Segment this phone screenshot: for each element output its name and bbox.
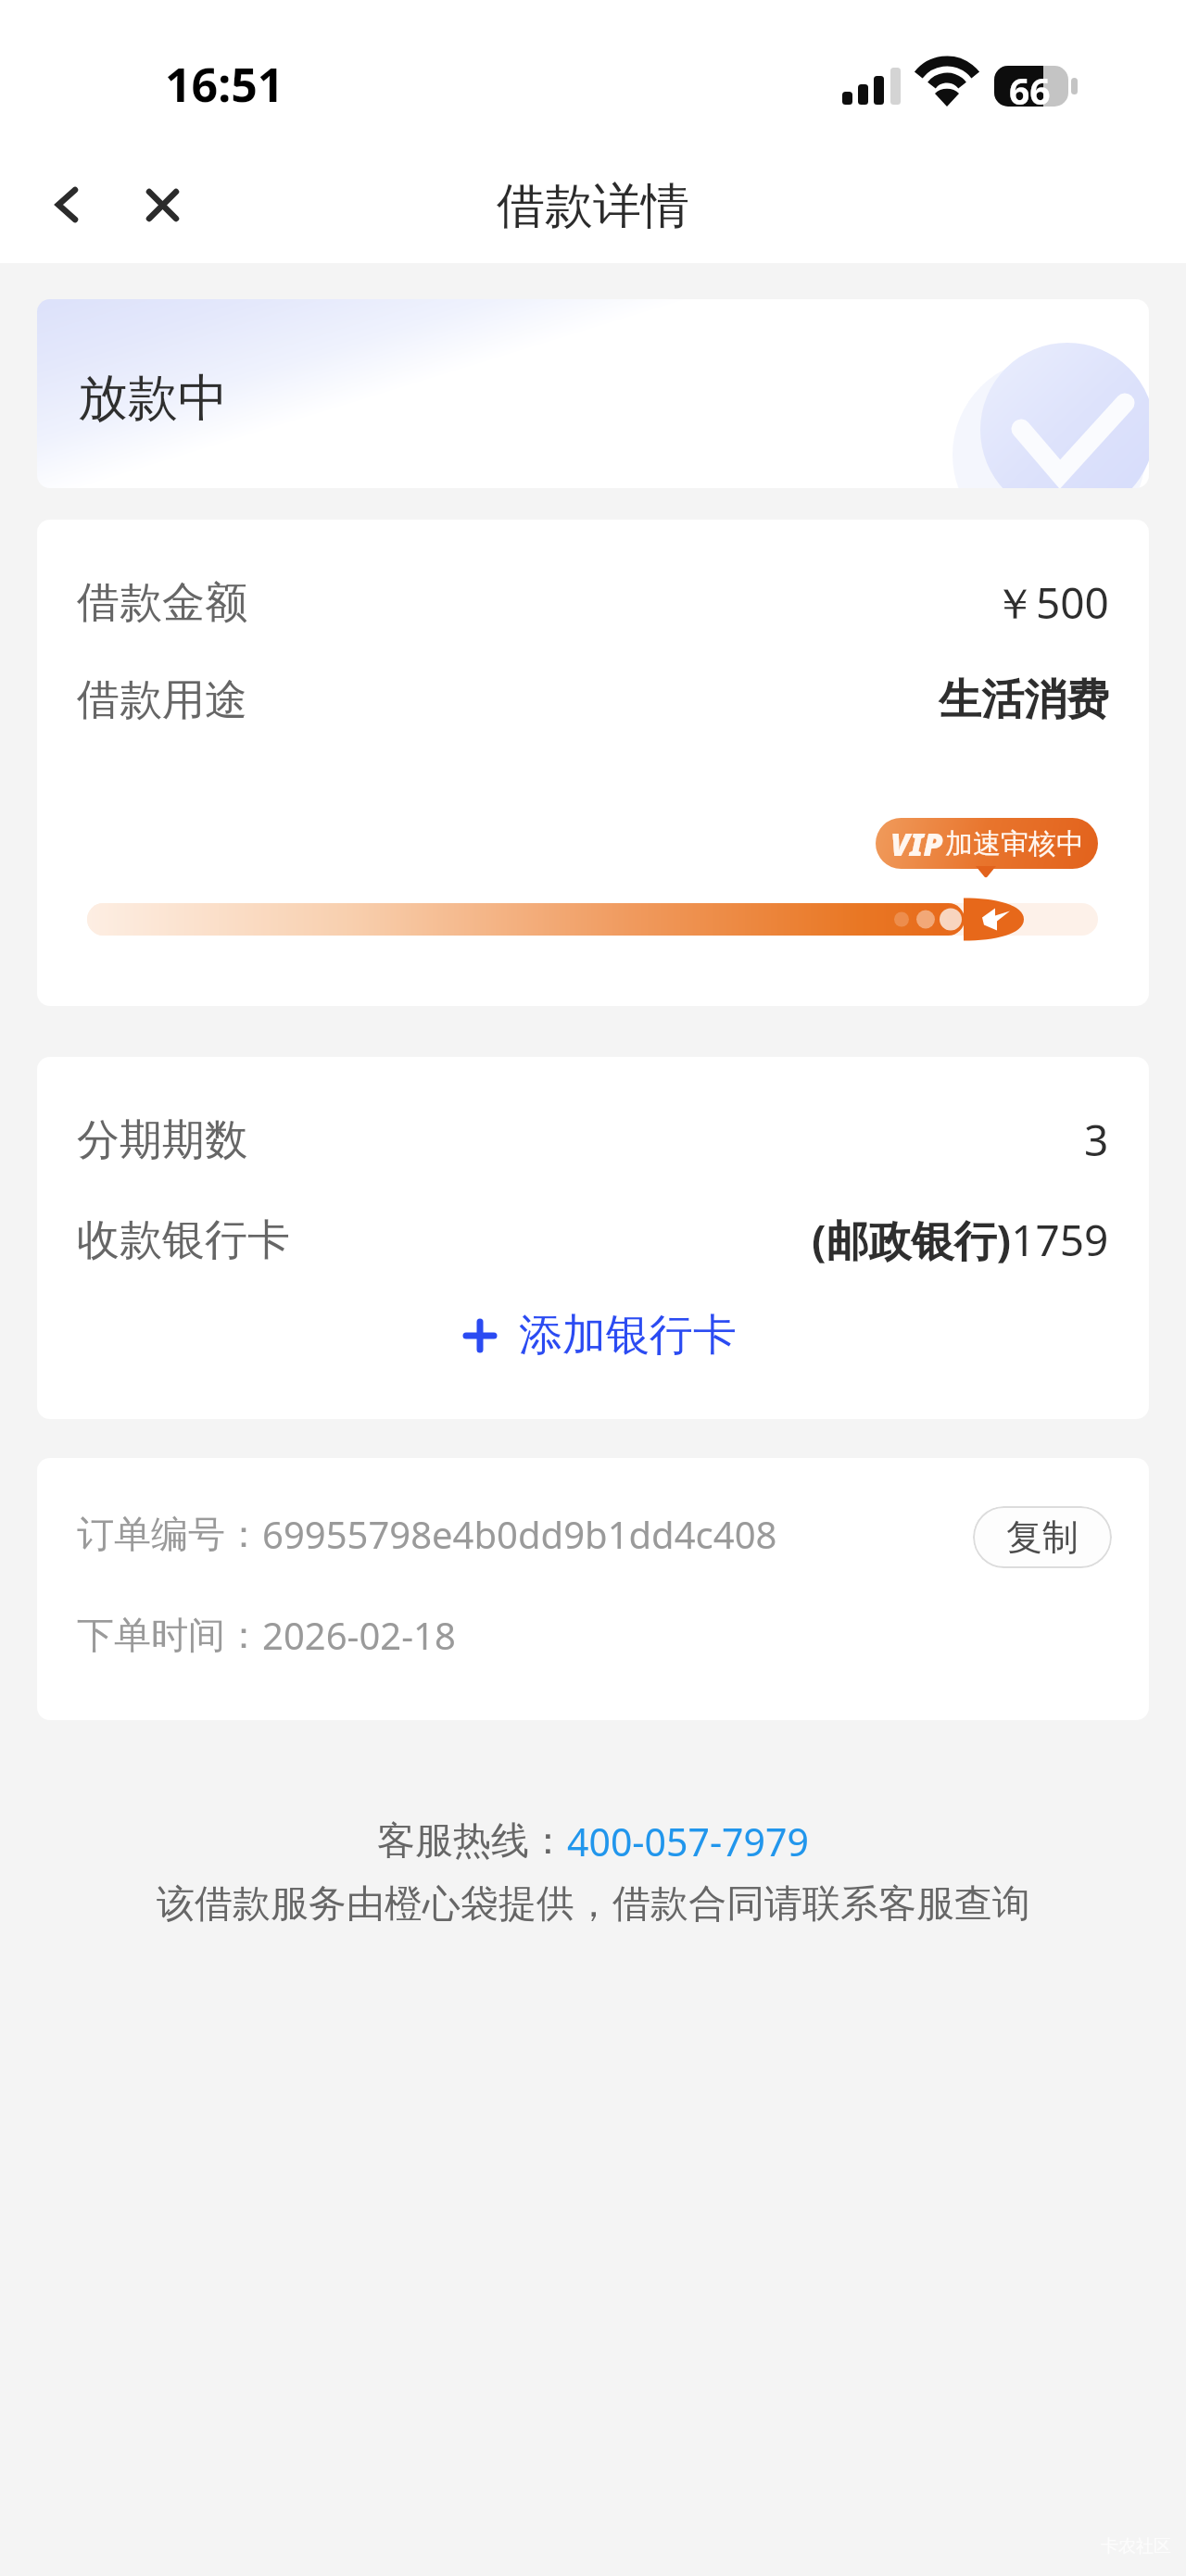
staticText: 3 [1084, 1111, 1109, 1169]
button[interactable]: 添加银行卡 [460, 1308, 737, 1363]
button[interactable]: Back [21, 160, 110, 249]
button[interactable]: 400-057-7979 [567, 1816, 809, 1867]
staticText: 下单时间： [77, 1612, 262, 1658]
button[interactable]: Close [118, 160, 207, 249]
staticText: ￥500 [993, 573, 1109, 632]
staticText: 66 [1009, 66, 1051, 115]
button[interactable]: 复制 [973, 1506, 1112, 1568]
staticText: 复制 [1006, 1514, 1079, 1560]
staticText: 借款金额 [77, 576, 247, 630]
staticText: 16:51 [165, 53, 284, 116]
staticText: 收款银行卡 [77, 1213, 290, 1267]
staticText: 该借款服务由橙心袋提供，借款合同请联系客服查询 [157, 1880, 1030, 1929]
staticText: 69955798e4b0dd9b1dd4c408 [262, 1509, 777, 1559]
staticText: 分期期数 [77, 1113, 247, 1167]
staticText: 放款中 [78, 367, 228, 430]
button[interactable] [37, 299, 1149, 488]
staticText: 加速审核中 [945, 826, 1084, 861]
staticText: VIP [890, 823, 943, 865]
staticText: 客服热线： [377, 1817, 567, 1866]
staticText: 借款详情 [497, 176, 689, 237]
staticText: (邮政银行)1759 [812, 1211, 1109, 1269]
staticText: 生活消费 [939, 673, 1109, 727]
staticText: 2026-02-18 [262, 1610, 456, 1660]
staticText: 添加银行卡 [519, 1308, 737, 1363]
staticText: 订单编号： [77, 1511, 262, 1557]
button[interactable]: VIP [876, 818, 1098, 869]
staticText: 借款用途 [77, 673, 247, 727]
